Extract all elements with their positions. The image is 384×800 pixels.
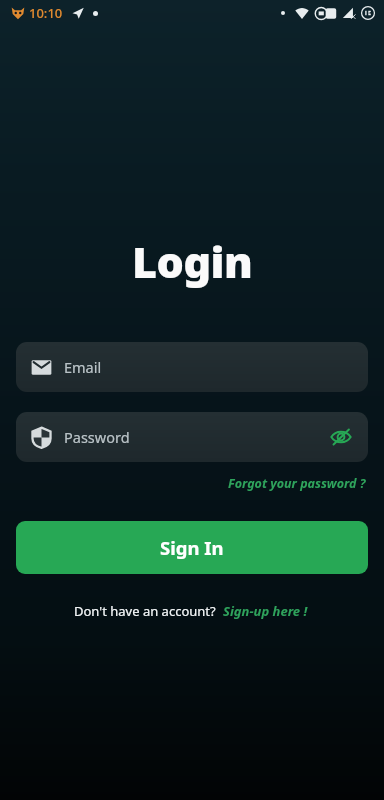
button[interactable]: Show password [328, 424, 354, 450]
button[interactable]: Password [16, 412, 368, 462]
button[interactable]: Email [16, 342, 368, 392]
button[interactable]: Sign In [16, 521, 368, 574]
staticText: Sign In [160, 535, 224, 560]
staticText: Email [64, 357, 102, 377]
staticText: 10:10 [29, 4, 63, 22]
staticText: Forgot your password ? [228, 475, 366, 492]
staticText: Login [132, 232, 253, 291]
staticText: Password [64, 427, 130, 447]
staticText: Sign-up here ! [223, 602, 308, 620]
button[interactable]: Forgot your password ? [226, 472, 368, 495]
button[interactable]: Sign-up here ! [221, 599, 310, 623]
staticText: Don't have an account? [74, 602, 216, 620]
